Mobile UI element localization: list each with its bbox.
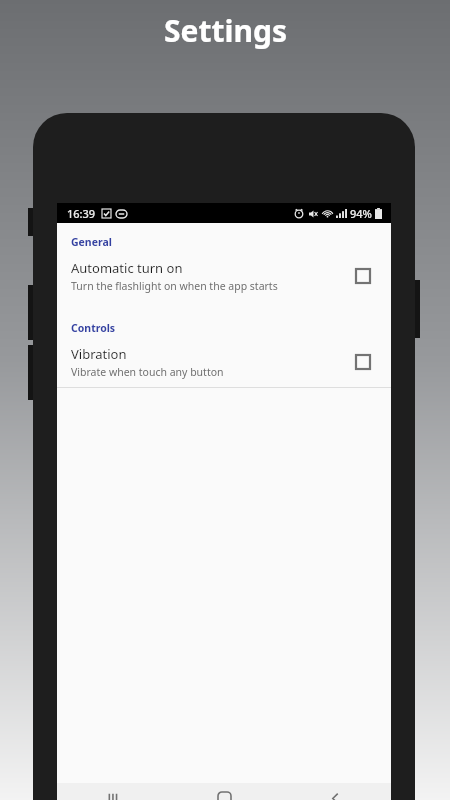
button[interactable]: Vibration — [57, 337, 391, 387]
button[interactable]: Vibration — [349, 348, 377, 376]
staticText: General — [71, 235, 112, 249]
staticText: Automatic turn on — [71, 259, 183, 277]
button[interactable]: Automatic turn on — [57, 251, 391, 301]
staticText: 94% — [350, 206, 372, 221]
button[interactable]: Recents — [57, 783, 169, 800]
button[interactable]: Automatic turn on — [349, 262, 377, 290]
staticText: Vibrate when touch any button — [71, 365, 224, 379]
staticText: Turn the flashlight on when the app star… — [71, 279, 278, 293]
staticText: Vibration — [71, 345, 127, 363]
button[interactable]: Back — [280, 783, 391, 800]
staticText: Controls — [71, 321, 116, 335]
button[interactable]: Home — [169, 783, 280, 800]
staticText: 16:39 — [67, 206, 96, 221]
staticText: Settings — [164, 10, 287, 51]
